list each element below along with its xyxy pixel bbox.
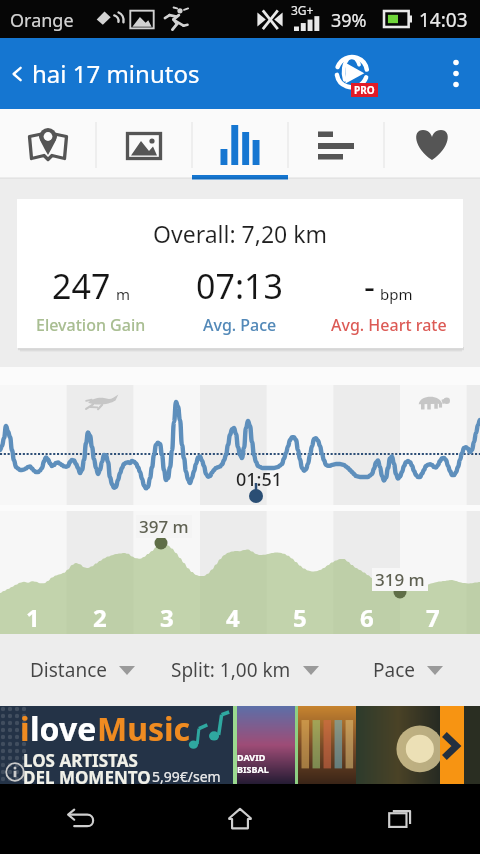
staticText: LOS ARTISTAS bbox=[23, 749, 138, 772]
button[interactable]: Photos bbox=[96, 109, 192, 179]
button[interactable]: Back bbox=[0, 784, 160, 854]
button[interactable]: Distance bbox=[14, 634, 150, 706]
button[interactable]: More options bbox=[432, 38, 480, 109]
staticText: Avg. Heart rate bbox=[331, 314, 447, 336]
staticText: 39% bbox=[331, 8, 367, 33]
staticText: hai 17 minutos bbox=[32, 57, 200, 90]
staticText: PRO bbox=[354, 83, 375, 97]
other: Back bbox=[7, 63, 29, 85]
staticText: love bbox=[30, 707, 97, 751]
staticText: Elevation Gain bbox=[36, 314, 146, 336]
staticText: 1 bbox=[26, 601, 40, 634]
button[interactable]: Back bbox=[7, 57, 200, 90]
staticText: 247 bbox=[52, 263, 111, 309]
staticText: 14:03 bbox=[419, 7, 468, 33]
staticText: 2 bbox=[93, 601, 107, 634]
button[interactable]: Advertisement iloveMusic bbox=[0, 706, 480, 784]
staticText: DAVID BISBAL bbox=[237, 751, 295, 775]
staticText: m bbox=[116, 284, 131, 304]
staticText: 07:13 bbox=[196, 263, 283, 309]
staticText: Split: 1,00 km bbox=[171, 657, 291, 683]
staticText: 3G+ bbox=[291, 2, 314, 18]
staticText: Music bbox=[97, 707, 191, 751]
staticText: 4 bbox=[226, 601, 240, 634]
staticText: 3 bbox=[160, 601, 174, 634]
staticText: i bbox=[20, 707, 30, 751]
button[interactable]: Home bbox=[160, 784, 320, 854]
staticText: 5 bbox=[293, 601, 307, 634]
button[interactable]: Split: 1,00 km bbox=[152, 634, 338, 706]
staticText: Avg. Pace bbox=[203, 314, 277, 336]
button[interactable]: Charts bbox=[192, 109, 288, 179]
staticText: bpm bbox=[380, 284, 413, 304]
staticText: 397 m bbox=[139, 515, 189, 538]
button[interactable]: Pro feature bbox=[333, 55, 374, 96]
staticText: 5,99€/sem bbox=[152, 767, 221, 786]
button[interactable]: Map bbox=[0, 109, 96, 179]
staticText: 319 m bbox=[375, 568, 425, 591]
staticText: 7 bbox=[426, 601, 440, 634]
staticText: Pace bbox=[373, 657, 415, 683]
staticText: 6 bbox=[360, 601, 374, 634]
staticText: 01:51 bbox=[236, 467, 283, 492]
staticText: Overall: 7,20 km bbox=[17, 218, 463, 249]
other: Next bbox=[436, 731, 466, 761]
staticText: DEL MOMENTO bbox=[23, 766, 151, 789]
button[interactable]: Pace bbox=[350, 634, 466, 706]
button[interactable]: Recent apps bbox=[320, 784, 480, 854]
staticText: Distance bbox=[30, 657, 107, 683]
staticText: - bbox=[364, 263, 375, 309]
button[interactable]: Heart rate bbox=[384, 109, 480, 179]
button[interactable]: Splits bbox=[288, 109, 384, 179]
staticText: Orange bbox=[10, 8, 74, 33]
